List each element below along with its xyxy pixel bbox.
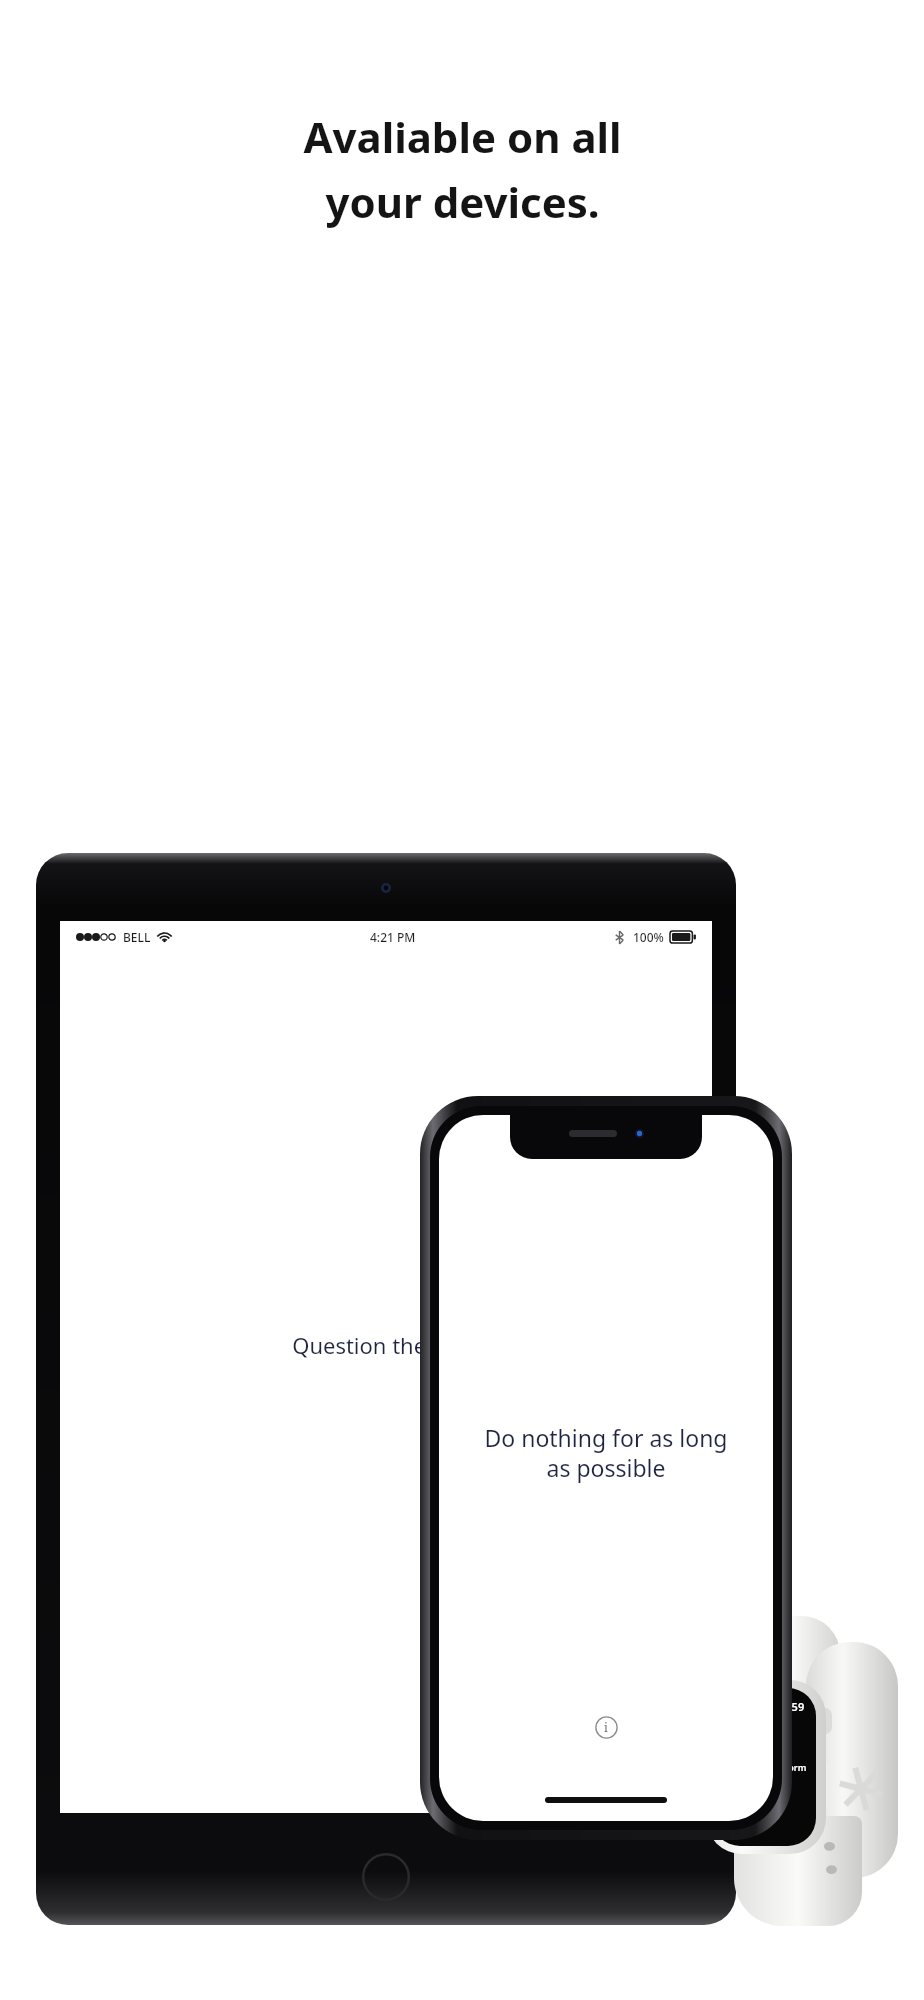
staticText: Repetition is a form of change — [720, 1761, 807, 1785]
staticText: 10:59 — [776, 1699, 805, 1714]
staticText: BELL — [123, 929, 151, 945]
button[interactable]: BELL — [36, 853, 736, 1925]
staticText: i — [604, 1719, 608, 1735]
staticText: 4:21 PM — [370, 929, 416, 945]
button[interactable]: Do nothing for as long as possible — [420, 1096, 792, 1840]
staticText: Avaliable on all — [303, 108, 622, 165]
staticText: Do nothing for as long as possible — [457, 1422, 755, 1483]
button[interactable]: Info — [592, 1713, 620, 1741]
button[interactable]: Apple Watch — [698, 1616, 904, 1926]
staticText: your devices. — [325, 173, 600, 230]
staticText: Question the hero — [292, 1330, 480, 1360]
staticText: 100% — [633, 929, 664, 945]
